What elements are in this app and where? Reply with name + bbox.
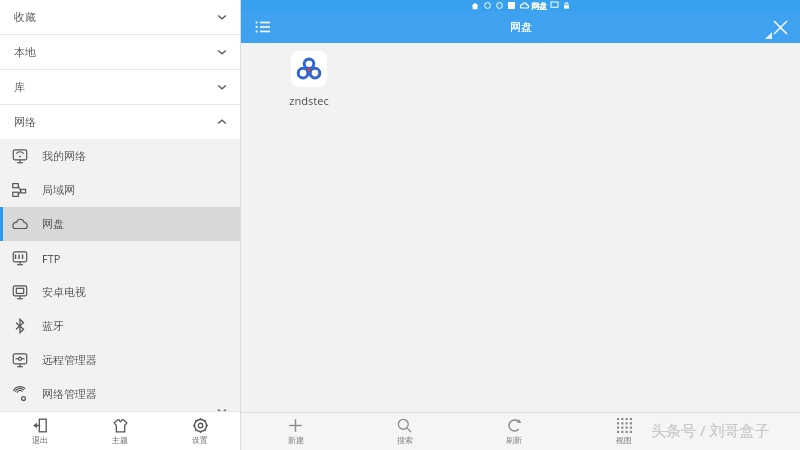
staticText: 蓝牙 xyxy=(42,319,64,333)
staticText: 视图 xyxy=(616,435,632,445)
button[interactable]: 刷新 xyxy=(459,412,569,450)
staticText: 本地 xyxy=(14,45,36,59)
button[interactable]: Menu xyxy=(249,13,277,41)
staticText: 新建 xyxy=(288,435,304,445)
button[interactable]: 网盘 xyxy=(0,207,240,241)
staticText: zndstec xyxy=(289,93,329,108)
button[interactable]: 蓝牙 xyxy=(0,309,240,343)
staticText: 搜索 xyxy=(397,435,413,445)
button[interactable]: 网络 xyxy=(0,105,240,139)
staticText: 退出 xyxy=(32,435,48,445)
button[interactable]: 视图 xyxy=(569,412,679,450)
button[interactable]: 远程管理器 xyxy=(0,343,240,377)
staticText: 刷新 xyxy=(506,435,522,445)
staticText: 网盘 xyxy=(42,217,64,231)
staticText: 库 xyxy=(14,80,25,94)
staticText: 主题 xyxy=(112,435,128,445)
staticText: 设置 xyxy=(192,435,208,445)
button[interactable]: 安卓电视 xyxy=(0,275,240,309)
button[interactable]: 我的网络 xyxy=(0,139,240,173)
staticText: 远程管理器 xyxy=(42,353,97,367)
button[interactable]: 设置 xyxy=(160,412,240,450)
staticText: 网盘 xyxy=(510,20,532,34)
button[interactable]: 搜索 xyxy=(350,412,459,450)
staticText: 网络管理器 xyxy=(42,387,97,401)
button[interactable]: 新建 xyxy=(241,412,350,450)
staticText: FTP xyxy=(42,251,61,266)
button[interactable]: FTP xyxy=(0,241,240,275)
staticText: 安卓电视 xyxy=(42,285,86,299)
button[interactable] xyxy=(291,51,327,87)
button[interactable]: 网络管理器 xyxy=(0,377,240,411)
staticText: 局域网 xyxy=(42,183,75,197)
staticText: 我的网络 xyxy=(42,149,86,163)
staticText: 网络 xyxy=(14,115,36,129)
button[interactable]: 本地 xyxy=(0,35,240,69)
button[interactable]: Close xyxy=(766,13,794,41)
button[interactable]: 收藏 xyxy=(0,0,240,34)
button[interactable]: 局域网 xyxy=(0,173,240,207)
button[interactable]: 退出 xyxy=(0,412,80,450)
button[interactable]: 库 xyxy=(0,70,240,104)
staticText: 收藏 xyxy=(14,10,36,24)
button[interactable]: 主题 xyxy=(80,412,160,450)
staticText: 头条号 / 刘哥盒子 xyxy=(651,420,770,440)
staticText: 网盘 xyxy=(531,1,547,11)
